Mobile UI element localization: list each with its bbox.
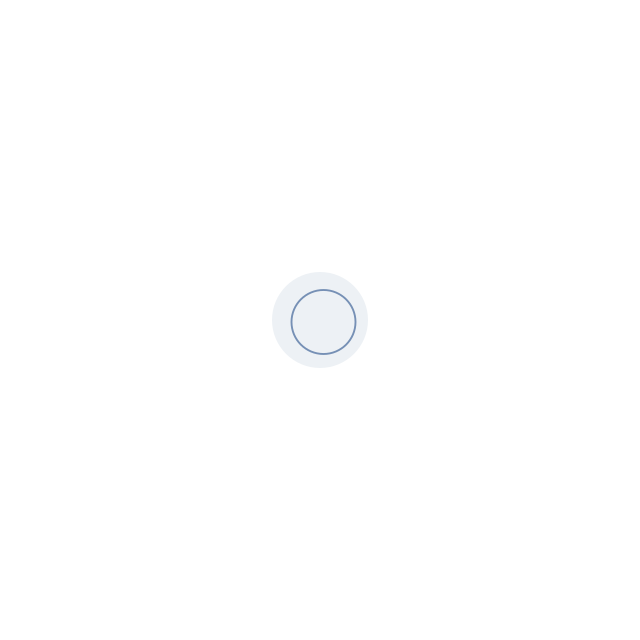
button[interactable]: Record [272,272,368,368]
